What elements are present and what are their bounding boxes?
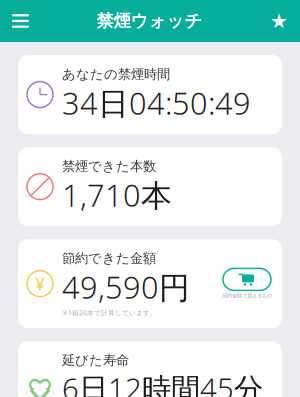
staticText: 6日12時間45分	[62, 368, 263, 397]
staticText: あなたの禁煙時間	[62, 66, 170, 82]
staticText: 34日04:50:49	[62, 82, 251, 123]
staticText: 節約金額で買えるもの	[222, 292, 272, 299]
staticText: 延びた寿命	[62, 352, 129, 369]
button[interactable]: メニュー	[0, 2, 41, 40]
staticText: 49,590円	[62, 267, 190, 307]
staticText: 禁煙できた本数	[62, 158, 156, 174]
staticText: ※1箱20本で計算しています。	[62, 308, 157, 317]
staticText: 1,710本	[62, 174, 172, 215]
staticText: ¥	[35, 272, 45, 295]
staticText: ★	[270, 10, 288, 32]
staticText: 節約できた金額	[62, 250, 156, 267]
button[interactable]: お気に入り	[258, 0, 300, 44]
button[interactable]: 節約金額で買えるもの	[222, 268, 282, 299]
staticText: 禁煙ウォッチ	[96, 10, 202, 32]
